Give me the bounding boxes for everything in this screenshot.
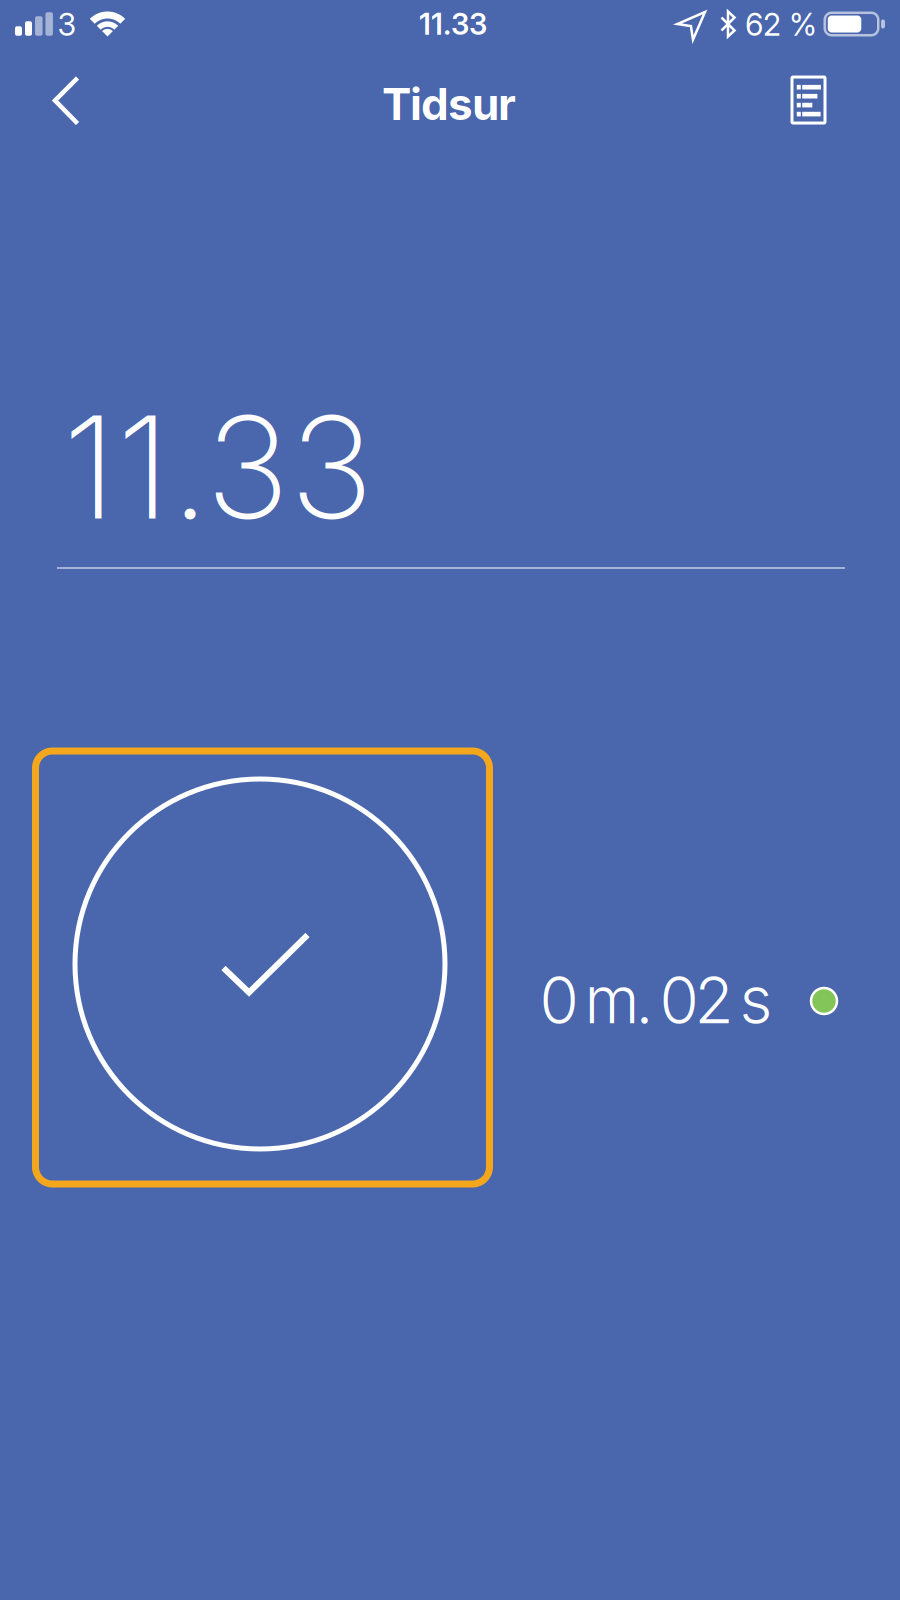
staticText: m. — [585, 961, 652, 1039]
staticText: 62 % — [745, 6, 817, 43]
button[interactable]: History — [778, 65, 838, 135]
button[interactable]: Stop timer — [32, 747, 493, 1187]
staticText: 11.33 — [419, 7, 487, 41]
staticText: s — [740, 961, 771, 1039]
staticText: 11.33 — [62, 384, 373, 550]
staticText: Tidsur — [382, 78, 516, 130]
staticText: 02 — [660, 961, 732, 1039]
staticText: 0 — [540, 961, 577, 1039]
staticText: 3 — [57, 6, 76, 43]
button[interactable]: Back — [28, 59, 98, 143]
